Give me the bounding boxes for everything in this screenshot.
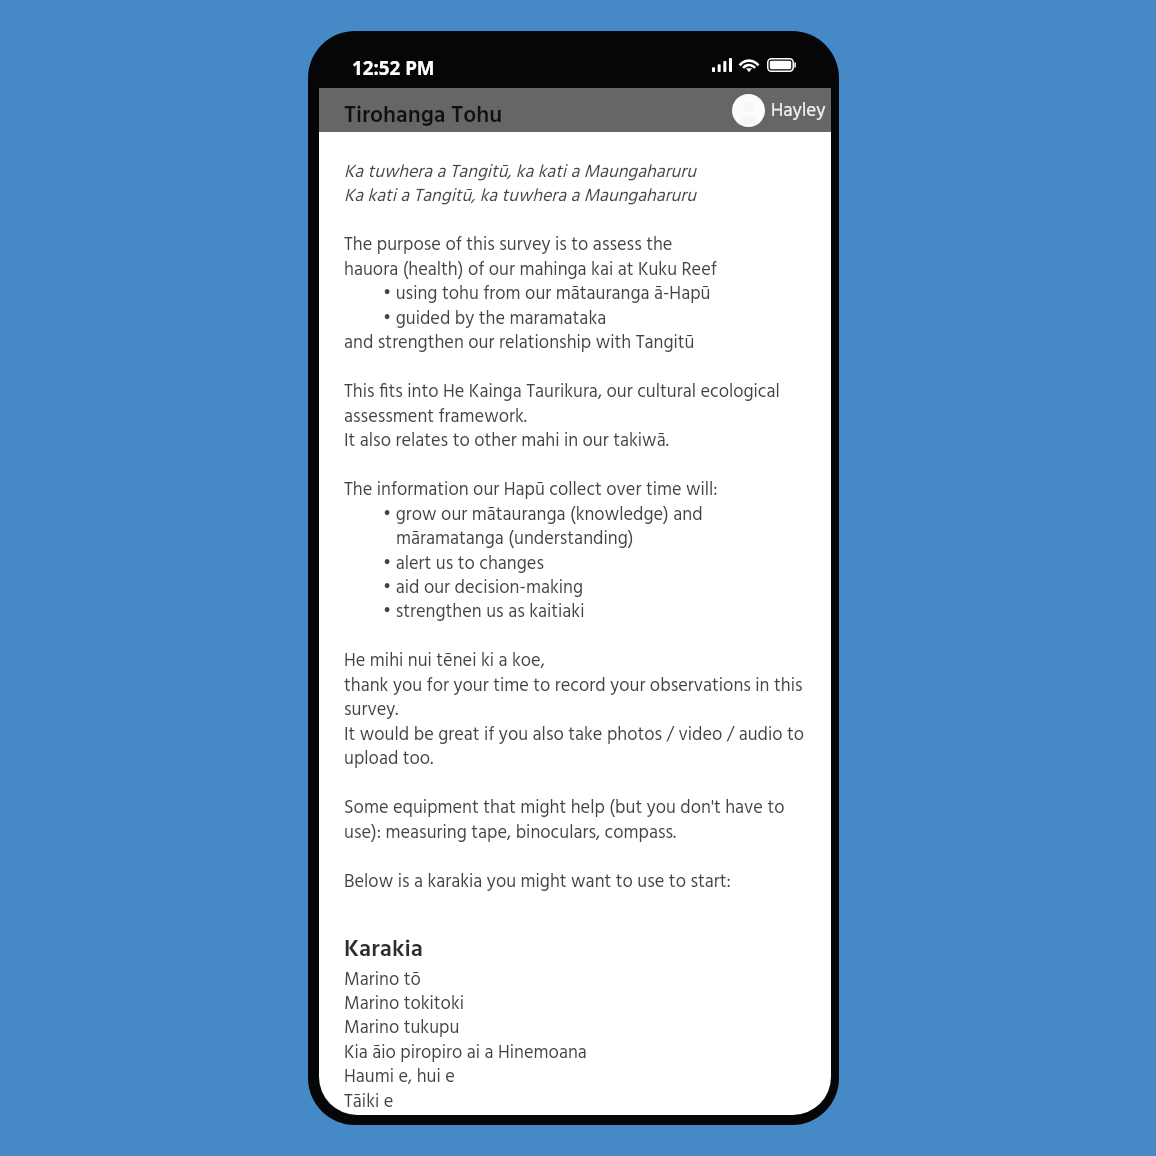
staticText: assessment framework. [344,403,527,432]
staticText: • strengthen us as kaitiaki [383,598,585,627]
staticText: • guided by the maramataka [383,305,607,334]
staticText: • using tohu from our mātauranga ā-Hapū [383,280,711,309]
button[interactable]: Tirohanga Tohu [344,98,503,135]
staticText: thank you for your time to record your o… [344,672,803,701]
staticText: Hayley [771,96,826,126]
button[interactable]: Profile [729,91,829,130]
staticText: Marino tukupu [344,1014,460,1043]
staticText: Karakia [344,931,423,969]
staticText: Haumi e, hui e [344,1063,455,1092]
staticText: The information our Hapū collect over ti… [344,476,718,505]
staticText: Ka kati a Tangitū, ka tuwhera a Maungaha… [344,182,696,211]
staticText: He mihi nui tēnei ki a koe, [344,647,545,676]
staticText: • grow our mātauranga (knowledge) and [383,501,703,530]
staticText: It also relates to other mahi in our tak… [344,427,669,456]
staticText: • alert us to changes [383,550,544,579]
staticText: It would be great if you also take photo… [344,721,805,750]
staticText: māramatanga (understanding) [396,525,634,554]
staticText: 12:52 PM [352,55,435,81]
staticText: • aid our decision-making [383,574,583,603]
staticText: upload too. [344,745,434,774]
staticText: This fits into He Kainga Taurikura, our … [344,378,780,407]
staticText: Tirohanga Tohu [344,98,503,135]
staticText: use): measuring tape, binoculars, compas… [344,819,677,848]
staticText: Below is a karakia you might want to use… [344,868,731,897]
staticText: and strengthen our relationship with Tan… [344,329,695,358]
staticText: Tāiki e [344,1088,394,1115]
staticText: Some equipment that might help (but you … [344,794,785,823]
staticText: Ka tuwhera a Tangitū, ka kati a Maungaha… [344,158,696,187]
staticText: Marino tō [344,966,421,995]
staticText: hauora (health) of our mahinga kai at Ku… [344,256,717,285]
other: Profile [732,94,765,127]
staticText: Kia āio piropiro ai a Hinemoana [344,1039,587,1068]
staticText: Marino tokitoki [344,990,465,1019]
staticText: survey. [344,696,399,725]
staticText: The purpose of this survey is to assess … [344,231,673,260]
